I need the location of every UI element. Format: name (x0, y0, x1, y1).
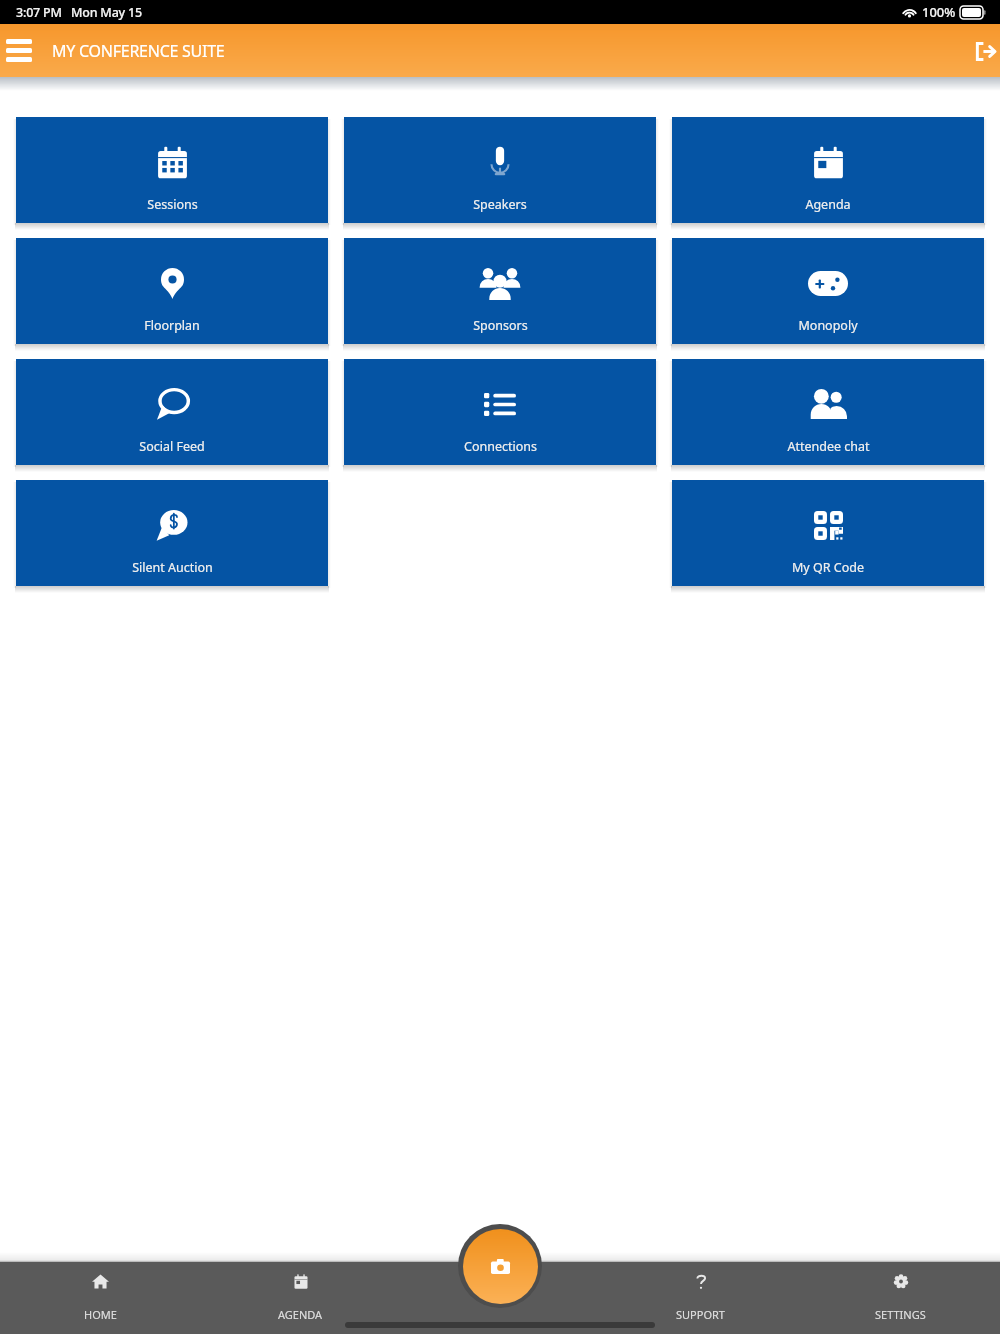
button[interactable]: Attendee chat (672, 359, 984, 465)
staticText: HOME (84, 1307, 117, 1322)
staticText: Attendee chat (787, 438, 870, 455)
button[interactable]: Speakers (344, 117, 656, 223)
button[interactable]: Take a photo (458, 1224, 542, 1308)
staticText: Connections (464, 438, 537, 455)
staticText: My QR Code (792, 559, 864, 576)
staticText: Sponsors (473, 317, 528, 334)
staticText: Social Feed (139, 438, 205, 455)
staticText: 3:07 PM Mon May 15 (16, 4, 142, 21)
staticText: Floorplan (144, 317, 200, 334)
staticText: AGENDA (278, 1307, 323, 1322)
staticText: SETTINGS (875, 1307, 926, 1322)
button[interactable]: SETTINGS (800, 1262, 1000, 1334)
staticText: Agenda (805, 196, 851, 213)
button[interactable]: Open navigation menu (0, 29, 41, 73)
button[interactable]: Sponsors (344, 238, 656, 344)
button[interactable]: Monopoly (672, 238, 984, 344)
button[interactable]: Connections (344, 359, 656, 465)
staticText: MY CONFERENCE SUITE (52, 40, 225, 62)
button[interactable]: Agenda (672, 117, 984, 223)
button[interactable]: Silent Auction (16, 480, 328, 586)
button[interactable]: AGENDA (200, 1262, 400, 1334)
staticText: Speakers (473, 196, 527, 213)
button[interactable]: SUPPORT (600, 1262, 800, 1334)
button[interactable]: Log out (963, 29, 1000, 73)
button[interactable]: Sessions (16, 117, 328, 223)
staticText: Silent Auction (132, 559, 213, 576)
staticText: 100% (922, 3, 956, 21)
button[interactable]: My QR Code (672, 480, 984, 586)
staticText: SUPPORT (676, 1307, 725, 1322)
button[interactable]: Floorplan (16, 238, 328, 344)
staticText: Monopoly (798, 317, 858, 334)
staticText: Sessions (147, 196, 198, 213)
button[interactable]: HOME (0, 1262, 200, 1334)
button[interactable]: Social Feed (16, 359, 328, 465)
